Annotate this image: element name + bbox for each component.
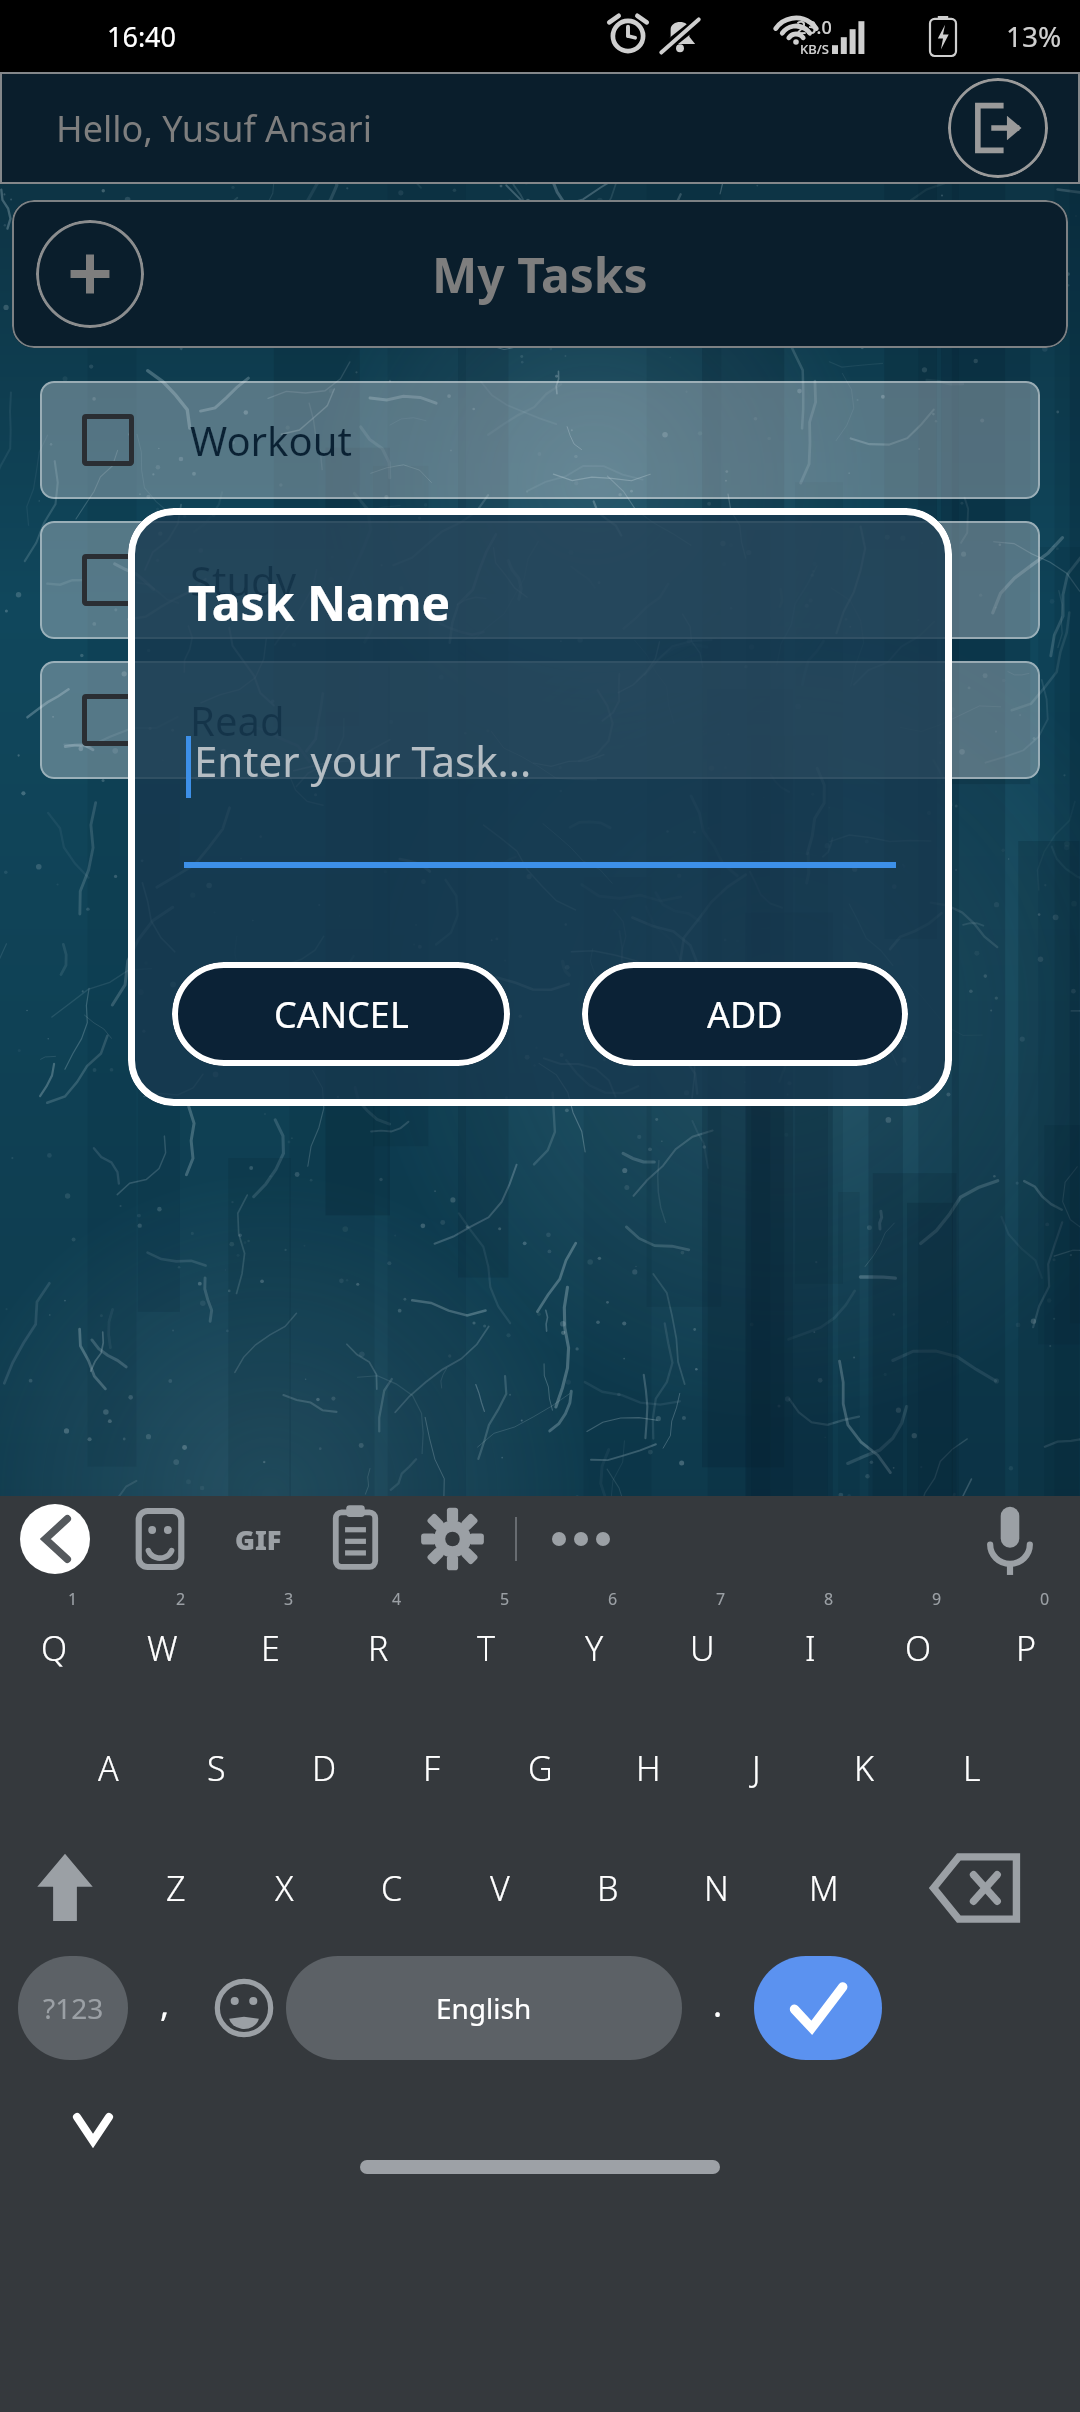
button[interactable]: English [286, 1956, 682, 2060]
button[interactable]: More options [531, 1496, 631, 1582]
staticText: 6 [608, 1588, 618, 1610]
button[interactable]: 5 [432, 1582, 540, 1702]
button[interactable]: 0 [972, 1582, 1080, 1702]
button[interactable]: Emoji [202, 1942, 286, 2074]
button[interactable]: 6 [540, 1582, 648, 1702]
staticText: U [690, 1625, 715, 1671]
button[interactable]: Shift [0, 1822, 122, 1942]
button[interactable]: Study [40, 521, 1040, 639]
staticText: 13% [1006, 17, 1062, 55]
staticText: R [368, 1625, 389, 1671]
staticText: T [477, 1625, 496, 1671]
button[interactable]: Done [754, 1956, 882, 2060]
staticText: Enter your Task... [194, 732, 532, 789]
staticText: J [752, 1745, 761, 1791]
staticText: G [528, 1745, 553, 1791]
staticText: 0 [1040, 1588, 1050, 1610]
button[interactable]: X [230, 1822, 338, 1942]
staticText: English [436, 1989, 532, 2027]
staticText: S [207, 1745, 226, 1791]
button[interactable]: 8 [756, 1582, 864, 1702]
staticText: X [275, 1865, 294, 1911]
staticText: B [597, 1865, 619, 1911]
staticText: Study [190, 553, 297, 607]
staticText: P [1016, 1625, 1037, 1671]
staticText: W [147, 1625, 178, 1671]
button[interactable]: Read [40, 661, 1040, 779]
staticText: 8 [824, 1588, 834, 1610]
button[interactable]: 1 [0, 1582, 108, 1702]
staticText: . [713, 1981, 723, 2027]
staticText: C [381, 1865, 403, 1911]
button[interactable]: GIF [210, 1496, 307, 1582]
button[interactable]: G [486, 1702, 594, 1822]
staticText: 9 [932, 1588, 942, 1610]
button[interactable]: Clipboard [307, 1496, 404, 1582]
button[interactable]: N [662, 1822, 770, 1942]
button[interactable]: ADD [582, 962, 908, 1066]
button[interactable]: M [770, 1822, 878, 1942]
staticText: GIF [235, 1521, 282, 1558]
staticText: Hello, Yusuf Ansari [56, 104, 372, 153]
button[interactable]: V [446, 1822, 554, 1942]
button[interactable]: , [128, 1942, 202, 2074]
button[interactable]: Stickers [110, 1496, 210, 1582]
staticText: , [160, 1981, 170, 2027]
staticText: O [905, 1625, 932, 1671]
button[interactable]: 9 [864, 1582, 972, 1702]
button[interactable]: Hello, Yusuf Ansari [0, 72, 1080, 184]
button[interactable]: Back [20, 1504, 90, 1574]
button[interactable]: . [682, 1942, 754, 2074]
staticText: Read [190, 693, 285, 747]
staticText: L [963, 1745, 981, 1791]
staticText: ADD [707, 990, 783, 1039]
button[interactable]: Logout [948, 78, 1048, 178]
staticText: 7 [716, 1588, 726, 1610]
button[interactable]: J [702, 1702, 810, 1822]
staticText: H [636, 1745, 661, 1791]
button[interactable]: 3 [216, 1582, 324, 1702]
staticText: ?123 [43, 1989, 104, 2027]
button[interactable]: H [594, 1702, 702, 1822]
button[interactable]: D [270, 1702, 378, 1822]
button[interactable]: CANCEL [172, 962, 510, 1066]
button[interactable]: 7 [648, 1582, 756, 1702]
staticText: A [98, 1745, 119, 1791]
staticText: V [490, 1865, 510, 1911]
staticText: CANCEL [274, 990, 409, 1039]
button[interactable]: B [554, 1822, 662, 1942]
button[interactable]: ?123 [18, 1956, 128, 2060]
staticText: 4 [392, 1588, 402, 1610]
staticText: 2 [176, 1588, 186, 1610]
staticText: KB/S [800, 40, 829, 58]
button[interactable]: Hide keyboard [68, 2104, 118, 2154]
button[interactable]: C [338, 1822, 446, 1942]
button[interactable]: S [162, 1702, 270, 1822]
staticText: Y [585, 1625, 604, 1671]
button[interactable]: Voice input [970, 1499, 1050, 1579]
staticText: Q [41, 1625, 68, 1671]
button[interactable]: Workout [40, 381, 1040, 499]
button[interactable]: Add task [36, 220, 144, 328]
staticText: N [704, 1865, 729, 1911]
button[interactable]: A [54, 1702, 162, 1822]
staticText: 5 [500, 1588, 510, 1610]
staticText: My Tasks [432, 242, 648, 307]
staticText: Task Name [188, 570, 451, 635]
button[interactable]: Z [122, 1822, 230, 1942]
button[interactable]: Backspace [878, 1822, 1080, 1942]
button[interactable]: L [918, 1702, 1026, 1822]
staticText: 16:40 [107, 18, 177, 55]
staticText: M [809, 1865, 839, 1911]
staticText: D [312, 1745, 337, 1791]
staticText: Z [166, 1865, 186, 1911]
button[interactable]: Enter your Task... [184, 718, 896, 868]
button[interactable]: 2 [108, 1582, 216, 1702]
staticText: K [854, 1745, 874, 1791]
button[interactable]: F [378, 1702, 486, 1822]
staticText: 3 [284, 1588, 294, 1610]
button[interactable]: Settings [404, 1496, 501, 1582]
button[interactable]: K [810, 1702, 918, 1822]
button[interactable]: 4 [324, 1582, 432, 1702]
staticText: I [805, 1625, 816, 1671]
